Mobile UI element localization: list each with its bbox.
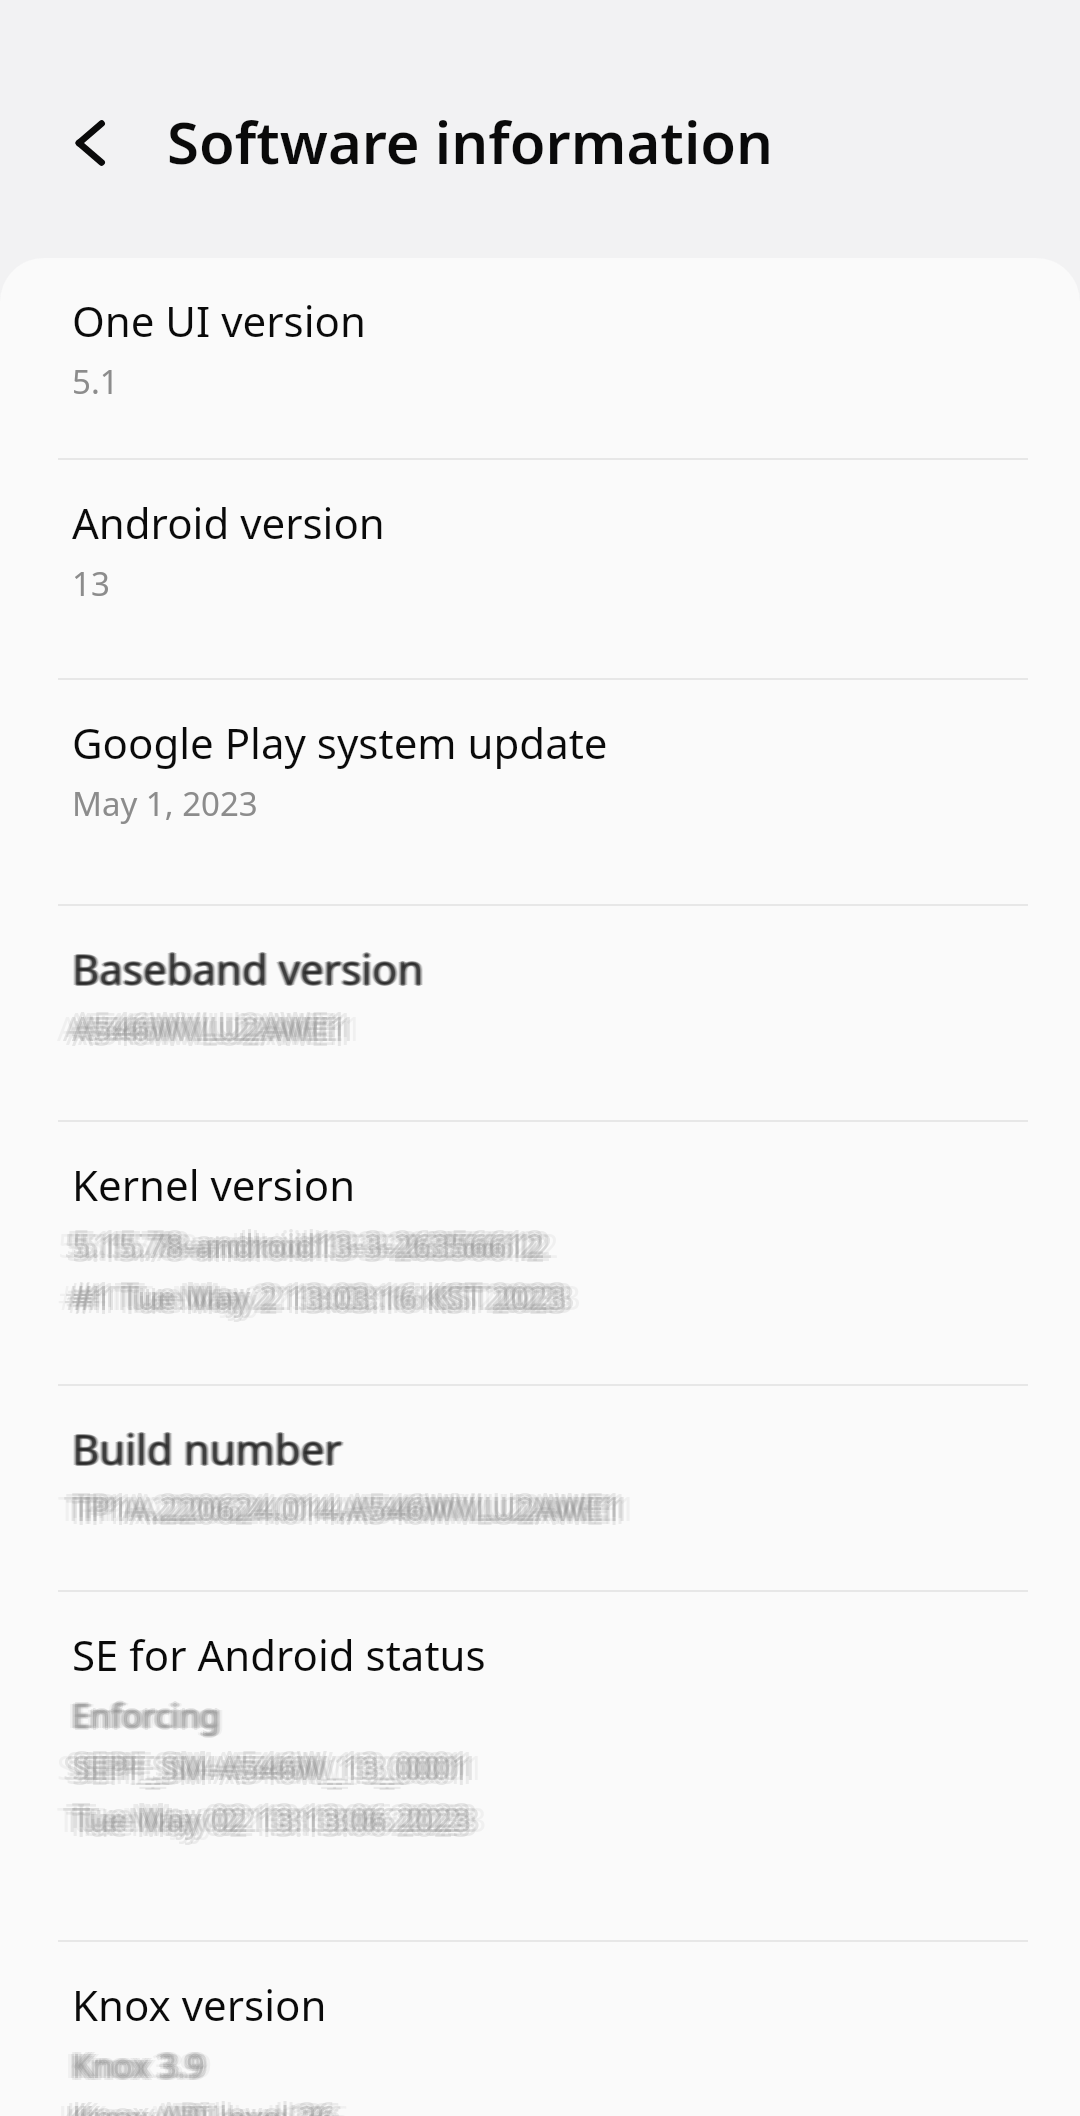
staticText: Enforcing [70,1692,219,1737]
staticText: SEPF_SM-A546W_13_0001 [78,1741,476,1786]
button[interactable]: Baseband version [0,906,1080,1120]
button[interactable]: Android version [0,460,1080,678]
staticText: Google Play system update [72,714,608,771]
staticText: Enforcing [72,1695,221,1740]
staticText: Enforcing [70,1694,219,1739]
staticText: Tue May 02 13:13:06 2023 [57,1797,457,1842]
staticText: 5.15.78-android13-3-26356612 [66,1220,539,1265]
staticText: Knox API level 36 [64,2095,328,2116]
staticText: #1 Tue May 2 13:03:16 KST 2023 [80,1275,575,1320]
staticText: #1 Tue May 2 13:03:16 KST 2023 [78,1272,573,1317]
staticText: Tue May 02 13:13:06 2023 [81,1797,481,1842]
staticText: #1 Tue May 2 13:03:16 KST 2023 [86,1275,581,1320]
staticText: Tue May 02 13:13:06 2023 [78,1793,478,1838]
staticText: Baseband version [71,939,423,995]
staticText: TP1A.220624.014.A546WVLU2AWE1 [58,1486,609,1531]
staticText: TP1A.220624.014.A546WVLU2AWE1 [72,1486,623,1531]
staticText: One UI version [72,292,366,349]
staticText: Build number [71,1421,341,1477]
staticText: Baseband version [73,939,425,995]
staticText: Knox 3.9 [72,2045,205,2090]
staticText: Knox 3.9 [68,2043,201,2088]
staticText: Enforcing [74,1692,223,1737]
staticText: 5.15.78-android13-3-26356612 [78,1220,551,1265]
staticText: Baseband version [73,941,425,997]
staticText: Knox API level 36 [80,2095,344,2116]
staticText: Enforcing [77,1693,226,1738]
staticText: 5.15.78-android13-3-26356612 [58,1223,531,1268]
staticText: 5.15.78-android13-3-26356612 [66,1226,539,1271]
staticText: Baseband version [69,940,421,996]
staticText: SE for Android status [72,1626,486,1683]
staticText: #1 Tue May 2 13:03:16 KST 2023 [58,1275,553,1320]
staticText: Knox 3.9 [72,2041,205,2086]
staticText: #1 Tue May 2 13:03:16 KST 2023 [72,1279,567,1324]
staticText: 5.15.78-android13-3-26356612 [72,1227,545,1272]
staticText: Baseband version [72,941,424,997]
staticText: A546WVLU2AWE1 [81,1006,357,1051]
staticText: Knox 3.9 [75,2041,208,2086]
staticText: TP1A.220624.014.A546WVLU2AWE1 [86,1486,637,1531]
staticText: #1 Tue May 2 13:03:16 KST 2023 [72,1271,567,1316]
staticText: Tue May 02 13:13:06 2023 [72,1802,472,1847]
staticText: Enforcing [67,1693,216,1738]
staticText: Baseband version [70,940,422,996]
staticText: SEPF_SM-A546W_13_0001 [87,1745,485,1790]
staticText: Knox API level 36 [78,2092,342,2116]
staticText: SEPF_SM-A546W_13_0001 [63,1745,461,1790]
staticText: Software information [167,102,774,181]
staticText: TP1A.220624.014.A546WVLU2AWE1 [72,1490,623,1535]
staticText: A546WVLU2AWE1 [63,1006,339,1051]
staticText: 5.15.78-android13-3-26356612 [64,1223,537,1268]
staticText: Build number [75,1420,345,1476]
staticText: Knox API level 36 [58,2095,322,2116]
staticText: TP1A.220624.014.A546WVLU2AWE1 [78,1483,629,1528]
button[interactable]: Build number [0,1386,1080,1590]
staticText: Tue May 02 13:13:06 2023 [87,1797,487,1842]
staticText: A546WVLU2AWE1 [78,1010,354,1055]
staticText: SEPF_SM-A546W_13_0001 [66,1741,464,1786]
staticText: Enforcing [72,1693,221,1738]
staticText: Tue May 02 13:13:06 2023 [72,1792,472,1837]
staticText: Enforcing [72,1691,221,1736]
staticText: Build number [69,1420,339,1476]
staticText: May 1, 2023 [72,781,258,826]
button[interactable]: One UI version [0,258,1080,458]
staticText: Knox API level 36 [66,2098,330,2116]
staticText: Build number [71,1419,341,1475]
staticText: Knox API level 36 [72,2095,336,2116]
staticText: 5.15.78-android13-3-26356612 [80,1223,553,1268]
staticText: A546WVLU2AWE1 [72,1011,348,1056]
staticText: Android version [72,494,385,551]
staticText: TP1A.220624.014.A546WVLU2AWE1 [64,1486,615,1531]
button[interactable]: Navigate up [46,96,140,190]
button[interactable]: Kernel version [0,1122,1080,1384]
button[interactable]: Google Play system update [0,680,1080,904]
staticText: Build number [73,1421,343,1477]
staticText: Tue May 02 13:13:06 2023 [66,1793,466,1838]
staticText: SEPF_SM-A546W_13_0001 [81,1745,479,1790]
staticText: 5.15.78-android13-3-26356612 [72,1223,545,1268]
staticText: A546WVLU2AWE1 [78,1002,354,1047]
staticText: Knox API level 36 [78,2098,342,2116]
staticText: Knox 3.9 [69,2041,202,2086]
staticText: Baseband version [74,940,426,996]
staticText: Baseband version [72,940,424,996]
staticText: Kernel version [72,1156,356,1213]
staticText: Knox 3.9 [75,2045,208,2090]
staticText: Knox 3.9 [69,2045,202,2090]
staticText: TP1A.220624.014.A546WVLU2AWE1 [72,1482,623,1527]
button[interactable]: Knox version [0,1942,1080,2116]
staticText: Build number [70,1420,340,1476]
staticText: Build number [72,1419,342,1475]
staticText: TP1A.220624.014.A546WVLU2AWE1 [66,1489,617,1534]
staticText: Knox 3.9 [76,2043,209,2088]
button[interactable]: SE for Android status [0,1592,1080,1940]
staticText: Tue May 02 13:13:06 2023 [63,1797,463,1842]
staticText: Tue May 02 13:13:06 2023 [78,1801,478,1846]
staticText: Knox API level 36 [66,2092,330,2116]
staticText: Knox version [72,1976,327,2033]
staticText: A546WVLU2AWE1 [66,1010,342,1055]
staticText: Knox 3.9 [79,2043,212,2088]
staticText: #1 Tue May 2 13:03:16 KST 2023 [72,1275,567,1320]
